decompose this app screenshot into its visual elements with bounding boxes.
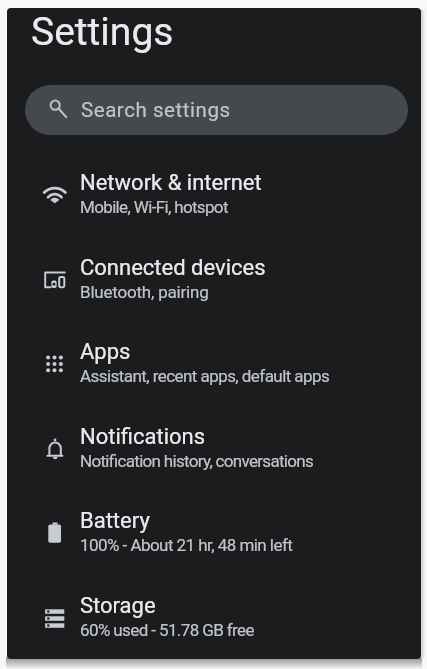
staticText: 100% - About 21 hr, 48 min left [80, 535, 293, 555]
staticText: Storage [80, 593, 156, 619]
button[interactable]: Storage [7, 576, 421, 659]
button[interactable]: Notifications [7, 407, 421, 492]
staticText: Network & internet [80, 170, 262, 196]
staticText: Battery [80, 508, 150, 534]
staticText: Mobile, Wi-Fi, hotspot [80, 197, 228, 217]
staticText: Connected devices [80, 255, 266, 281]
button[interactable]: Search settings [25, 85, 408, 135]
staticText: Assistant, recent apps, default apps [80, 366, 330, 386]
button[interactable]: Apps [7, 322, 421, 407]
button[interactable]: Connected devices [7, 238, 421, 323]
staticText: Notification history, conversations [80, 451, 314, 471]
staticText: Bluetooth, pairing [80, 282, 209, 302]
staticText: 60% used - 51.78 GB free [80, 620, 254, 640]
staticText: Settings [31, 9, 174, 55]
staticText: Apps [80, 339, 131, 365]
staticText: Notifications [80, 424, 206, 450]
staticText: Search settings [81, 98, 231, 122]
button[interactable]: Battery [7, 491, 421, 576]
button[interactable]: Network & internet [7, 153, 421, 238]
